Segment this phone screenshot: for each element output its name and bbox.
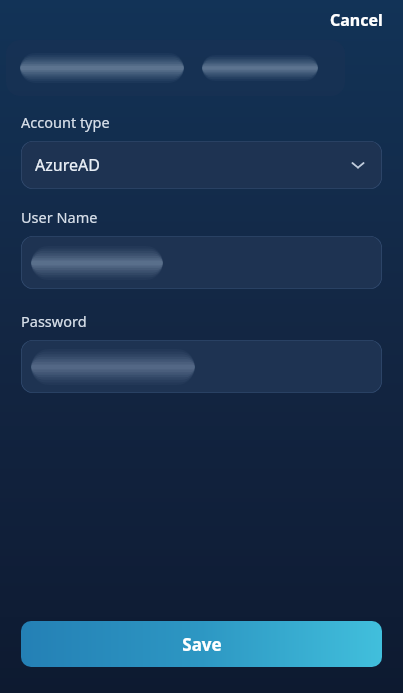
button[interactable] [21, 340, 382, 393]
staticText: Password [21, 311, 87, 331]
staticText: Cancel [330, 9, 383, 31]
button[interactable]: AzureAD [21, 141, 382, 189]
button[interactable] [21, 236, 382, 289]
button[interactable]: Save [21, 621, 382, 667]
staticText: AzureAD [35, 154, 100, 176]
staticText: Account type [21, 112, 110, 132]
other: Expand account type [348, 155, 368, 175]
staticText: Save [182, 633, 222, 656]
staticText: User Name [21, 207, 98, 227]
button[interactable]: Cancel [322, 5, 391, 35]
